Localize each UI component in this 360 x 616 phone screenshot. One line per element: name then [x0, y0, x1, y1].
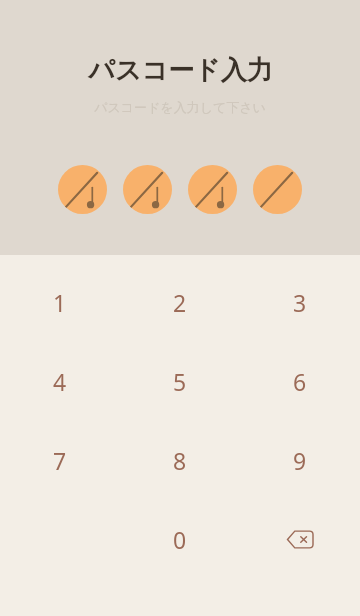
- button[interactable]: 4: [0, 351, 120, 411]
- staticText: パスコードを入力して下さい: [94, 99, 266, 115]
- button[interactable]: Backspace: [240, 509, 360, 569]
- button[interactable]: [253, 165, 302, 214]
- staticText: 1: [53, 287, 67, 318]
- staticText: 8: [173, 445, 187, 476]
- staticText: パスコード入力: [88, 54, 273, 87]
- staticText: 6: [293, 366, 307, 397]
- staticText: 5: [173, 366, 187, 397]
- button[interactable]: 1: [0, 272, 120, 332]
- staticText: 7: [53, 445, 67, 476]
- button[interactable]: 6: [240, 351, 360, 411]
- button[interactable]: 7: [0, 430, 120, 490]
- button[interactable]: [58, 165, 107, 214]
- staticText: 2: [173, 287, 187, 318]
- button[interactable]: 8: [120, 430, 240, 490]
- staticText: 3: [293, 287, 307, 318]
- staticText: 4: [53, 366, 67, 397]
- button[interactable]: 2: [120, 272, 240, 332]
- staticText: 9: [293, 445, 307, 476]
- button[interactable]: 9: [240, 430, 360, 490]
- button[interactable]: 5: [120, 351, 240, 411]
- button[interactable]: 3: [240, 272, 360, 332]
- button[interactable]: [123, 165, 172, 214]
- staticText: 0: [173, 524, 187, 555]
- button[interactable]: [188, 165, 237, 214]
- button[interactable]: 0: [120, 509, 240, 569]
